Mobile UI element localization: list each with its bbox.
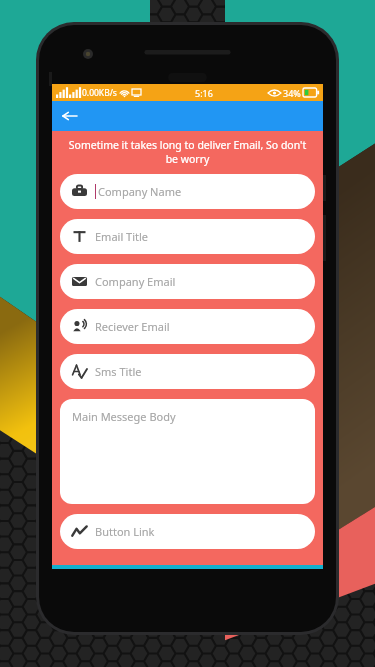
button[interactable]: Company Name: [60, 174, 315, 209]
button[interactable]: Back: [58, 104, 82, 128]
staticText: Company Name: [98, 184, 182, 199]
button[interactable]: Email Title: [60, 219, 315, 254]
button[interactable]: Company Email: [60, 264, 315, 299]
button[interactable]: Sms Title: [60, 354, 315, 389]
staticText: Sometime it takes long to deliver Email,…: [66, 138, 309, 166]
staticText: Company Email: [95, 274, 176, 289]
staticText: Sms Title: [95, 364, 142, 379]
staticText: 34%: [283, 87, 301, 99]
button[interactable]: Main Messege Body: [60, 399, 315, 504]
button[interactable]: Reciever Email: [60, 309, 315, 344]
button[interactable]: Button Link: [60, 514, 315, 549]
staticText: Email Title: [95, 229, 149, 244]
staticText: Reciever Email: [95, 319, 170, 334]
staticText: Main Messege Body: [72, 409, 176, 424]
staticText: Button Link: [95, 524, 155, 539]
staticText: 0.00KB/s: [82, 87, 117, 99]
staticText: 5:16: [195, 87, 213, 99]
